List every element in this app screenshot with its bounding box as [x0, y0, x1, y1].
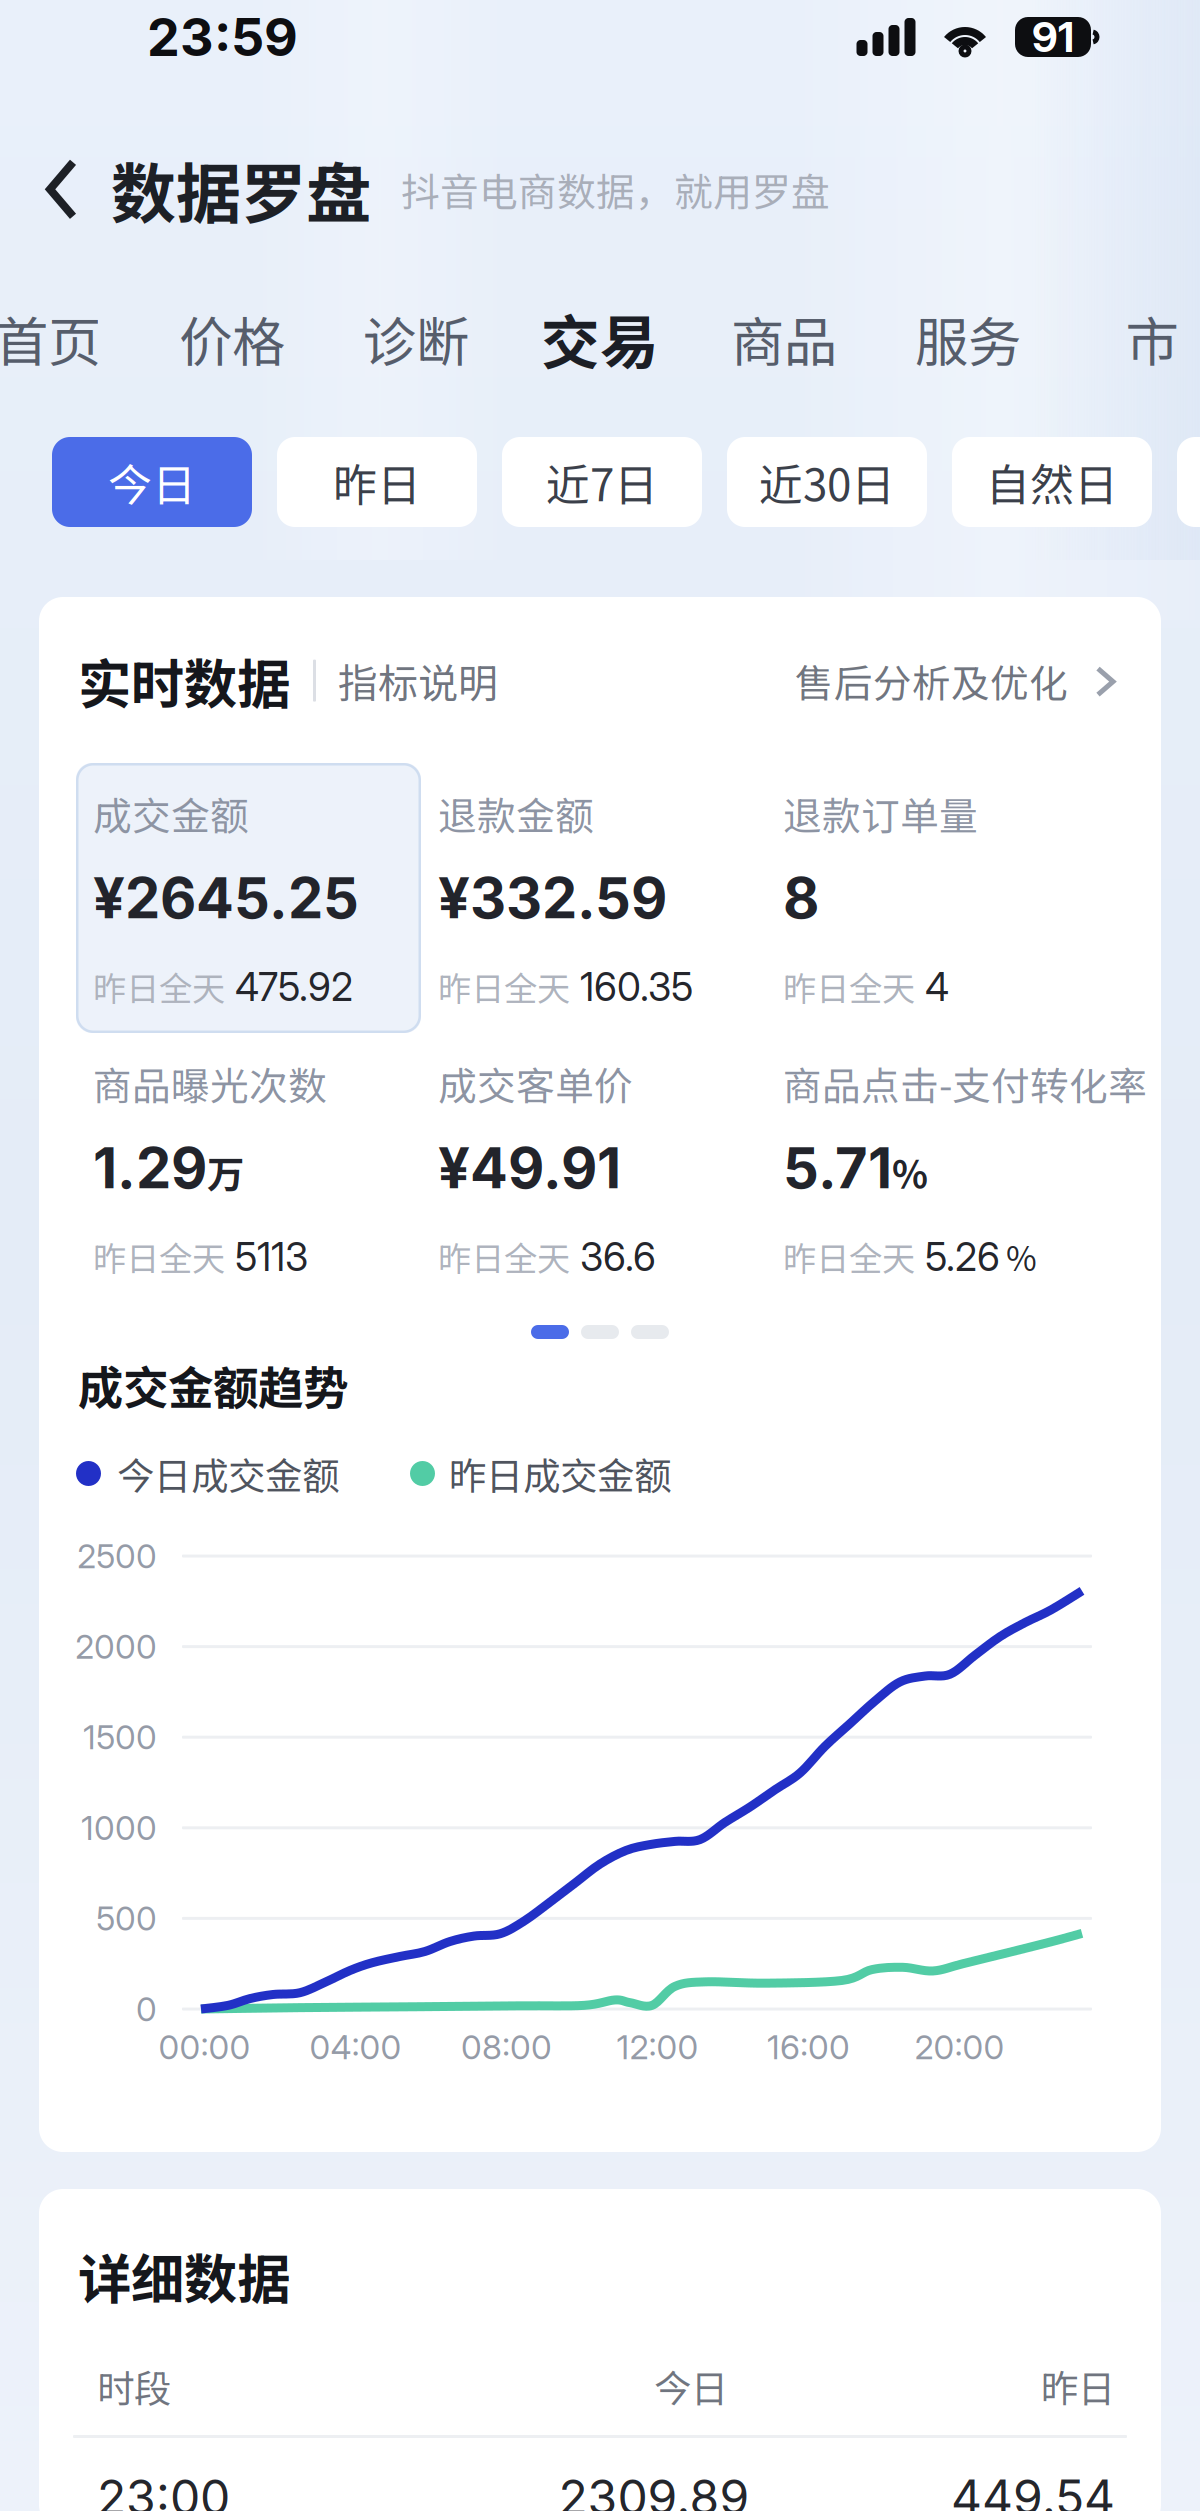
staticText: 成交客单价: [438, 1055, 633, 1111]
staticText: %: [892, 1145, 928, 1199]
staticText: 16:00: [767, 2027, 850, 2067]
staticText: 00:00: [158, 2027, 250, 2067]
staticText: 自然日: [986, 450, 1118, 514]
button[interactable]: 诊断: [324, 272, 508, 404]
button[interactable]: 成交客单价: [421, 1033, 766, 1303]
staticText: 退款金额: [438, 785, 594, 841]
button[interactable]: 售后分析及优化: [795, 653, 1116, 709]
staticText: 价格: [179, 300, 285, 377]
staticText: 160.35: [580, 964, 693, 1010]
staticText: 昨日: [333, 450, 421, 514]
button[interactable]: 指标说明: [338, 652, 498, 710]
button[interactable]: 商品点击-支付转化率: [766, 1033, 1111, 1303]
staticText: 近7日: [546, 450, 658, 514]
staticText: 5.71: [783, 1134, 892, 1202]
button[interactable]: 自然日: [952, 437, 1152, 527]
staticText: 04:00: [309, 2027, 401, 2067]
button[interactable]: 返回: [23, 158, 99, 220]
button[interactable]: 成交金额: [76, 763, 421, 1033]
staticText: 23:59: [147, 5, 298, 68]
staticText: 昨日成交金额: [449, 1446, 671, 1501]
staticText: 今日成交金额: [117, 1446, 339, 1501]
staticText: 2500: [77, 1536, 157, 1576]
staticText: 5113: [235, 1234, 308, 1280]
staticText: 首页: [0, 300, 101, 377]
button[interactable]: 今日: [52, 437, 252, 527]
staticText: 近30日: [759, 450, 895, 514]
staticText: 8: [783, 864, 819, 932]
staticText: 4: [925, 964, 949, 1010]
staticText: 5.26: [925, 1234, 1000, 1280]
staticText: 实时数据: [78, 642, 290, 719]
staticText: ¥2645.25: [93, 864, 359, 932]
staticText: 500: [96, 1898, 157, 1938]
staticText: 交易: [541, 296, 659, 381]
staticText: 今日: [108, 450, 196, 514]
button[interactable]: 服务: [876, 272, 1060, 404]
staticText: 商品曝光次数: [93, 1055, 327, 1111]
button[interactable]: 近7日: [502, 437, 702, 527]
staticText: 商品点击-支付转化率: [783, 1055, 1147, 1111]
staticText: 449.54: [951, 2468, 1115, 2511]
staticText: 2000: [75, 1626, 157, 1667]
staticText: 今日: [654, 2359, 728, 2413]
staticText: 昨日全天: [93, 962, 225, 1011]
button[interactable]: 商品曝光次数: [76, 1033, 421, 1303]
staticText: 昨日全天: [438, 1232, 570, 1281]
staticText: 36.6: [580, 1234, 656, 1280]
staticText: 万: [207, 1145, 244, 1199]
staticText: 昨日: [1041, 2359, 1115, 2413]
staticText: 1000: [81, 1808, 157, 1848]
staticText: 数据罗盘: [111, 142, 371, 237]
staticText: 2309.89: [558, 2468, 749, 2511]
staticText: 市: [1125, 300, 1178, 377]
staticText: 23:00: [97, 2468, 230, 2511]
staticText: 成交金额趋势: [78, 1352, 348, 1418]
staticText: 91: [1032, 12, 1074, 62]
staticText: 退款订单量: [783, 785, 978, 841]
staticText: 20:00: [914, 2027, 1004, 2067]
staticText: 0: [136, 1989, 157, 2029]
staticText: 昨日全天: [438, 962, 570, 1011]
staticText: %: [1006, 1232, 1037, 1281]
staticText: ¥49.91: [438, 1134, 621, 1202]
button[interactable]: 价格: [140, 272, 324, 404]
staticText: 商品: [731, 300, 837, 377]
staticText: 指标说明: [338, 652, 498, 710]
button[interactable]: 近30日: [727, 437, 927, 527]
staticText: ¥332.59: [438, 864, 667, 932]
button[interactable]: 首页: [0, 272, 140, 404]
staticText: 1.29: [93, 1134, 207, 1202]
staticText: 475.92: [235, 964, 353, 1010]
staticText: 详细数据: [78, 2237, 290, 2314]
staticText: 抖音电商数据，就用罗盘: [401, 161, 830, 217]
staticText: 服务: [915, 300, 1021, 377]
staticText: 售后分析及优化: [795, 653, 1068, 709]
button[interactable]: 退款金额: [421, 763, 766, 1033]
staticText: 昨日全天: [783, 962, 915, 1011]
staticText: 12:00: [616, 2027, 698, 2067]
staticText: 08:00: [461, 2027, 552, 2067]
button[interactable]: 市: [1060, 272, 1200, 404]
button[interactable]: 昨日: [277, 437, 477, 527]
staticText: 诊断: [363, 300, 469, 377]
button[interactable]: 商品: [692, 272, 876, 404]
button[interactable]: 退款订单量: [766, 763, 1111, 1033]
staticText: 昨日全天: [93, 1232, 225, 1281]
staticText: 时段: [97, 2359, 171, 2413]
button[interactable]: 交易: [508, 272, 692, 404]
button[interactable]: [1177, 437, 1200, 527]
staticText: 昨日全天: [783, 1232, 915, 1281]
staticText: 成交金额: [93, 785, 249, 841]
staticText: 1500: [83, 1717, 157, 1757]
